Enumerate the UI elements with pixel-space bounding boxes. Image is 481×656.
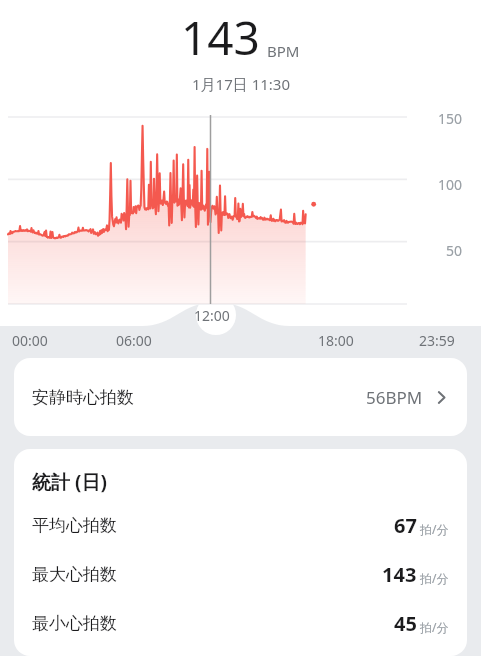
staticText: 67 xyxy=(394,512,417,539)
staticText: 12:00 xyxy=(194,306,230,325)
staticText: 56BPM xyxy=(366,386,423,409)
staticText: 143 xyxy=(382,561,417,588)
staticText: 安静時心拍数 xyxy=(32,387,134,408)
staticText: 拍/分 xyxy=(420,521,449,537)
staticText: 100 xyxy=(438,175,463,194)
staticText: 拍/分 xyxy=(420,570,449,586)
button[interactable]: 最小心拍数 xyxy=(32,599,449,648)
staticText: 拍/分 xyxy=(420,619,449,635)
button[interactable]: 平均心拍数 xyxy=(32,501,449,550)
button[interactable]: 安静時心拍数 xyxy=(14,358,467,436)
staticText: 00:00 xyxy=(12,331,48,348)
staticText: BPM xyxy=(267,41,300,61)
staticText: 150 xyxy=(438,109,463,128)
staticText: 23:59 xyxy=(419,331,455,348)
staticText: 50 xyxy=(446,241,463,260)
staticText: 45 xyxy=(394,610,417,637)
staticText: 最小心拍数 xyxy=(32,613,117,634)
staticText: 最大心拍数 xyxy=(32,564,117,585)
button[interactable]: 最大心拍数 xyxy=(32,550,449,599)
staticText: 18:00 xyxy=(318,331,354,348)
staticText: 1月17日 11:30 xyxy=(192,74,290,94)
staticText: 平均心拍数 xyxy=(32,515,117,536)
staticText: 143 xyxy=(181,6,260,69)
other: Open resting heart rate xyxy=(434,390,449,405)
staticText: 統計 (日) xyxy=(32,469,107,495)
staticText: 06:00 xyxy=(116,331,152,348)
